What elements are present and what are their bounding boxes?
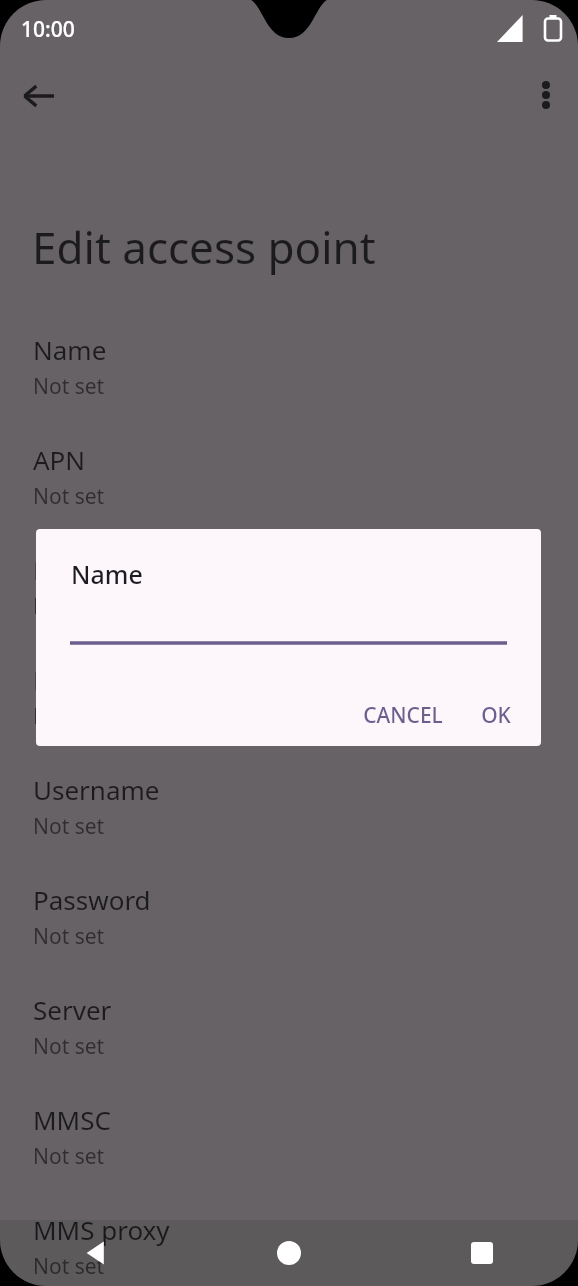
staticText: Proxy xyxy=(33,552,102,587)
button[interactable]: Server xyxy=(0,992,578,1080)
staticText: Not set xyxy=(33,1142,105,1171)
staticText: OK xyxy=(481,701,511,730)
button[interactable]: APN xyxy=(0,442,578,530)
button[interactable]: Recent apps xyxy=(385,1220,578,1286)
button[interactable]: MMS proxy xyxy=(0,1212,578,1286)
button[interactable]: Home xyxy=(192,1220,385,1286)
staticText: Server xyxy=(33,992,112,1027)
staticText: Name xyxy=(71,557,143,591)
staticText: 10:00 xyxy=(21,15,75,44)
button[interactable]: More options xyxy=(518,67,574,123)
staticText: Name xyxy=(33,332,107,367)
button[interactable]: CANCEL xyxy=(349,693,457,738)
staticText: Not set xyxy=(33,1032,105,1061)
button[interactable]: Name xyxy=(0,332,578,420)
staticText: APN xyxy=(33,442,86,477)
button[interactable]: MMSC xyxy=(0,1102,578,1190)
button[interactable]: Back xyxy=(10,67,68,125)
staticText: Password xyxy=(33,882,151,917)
staticText: MMS proxy xyxy=(33,1212,170,1247)
staticText: Not set xyxy=(33,592,105,621)
staticText: Port xyxy=(33,662,85,697)
button[interactable]: Proxy xyxy=(0,552,578,640)
staticText: Not set xyxy=(33,1252,105,1281)
staticText: Username xyxy=(33,772,160,807)
staticText: Edit access point xyxy=(32,217,376,277)
staticText: Not set xyxy=(33,372,105,401)
button[interactable]: OK xyxy=(467,693,525,738)
staticText: Not set xyxy=(33,922,105,951)
button[interactable]: Username xyxy=(0,772,578,860)
staticText: Not set xyxy=(33,812,105,841)
button[interactable]: Password xyxy=(0,882,578,970)
staticText: Not set xyxy=(33,482,105,511)
button[interactable]: Back xyxy=(0,1220,192,1286)
staticText: MMSC xyxy=(33,1102,111,1137)
button[interactable]: Port xyxy=(0,662,578,750)
staticText: CANCEL xyxy=(363,701,443,730)
staticText: Not set xyxy=(33,702,105,731)
